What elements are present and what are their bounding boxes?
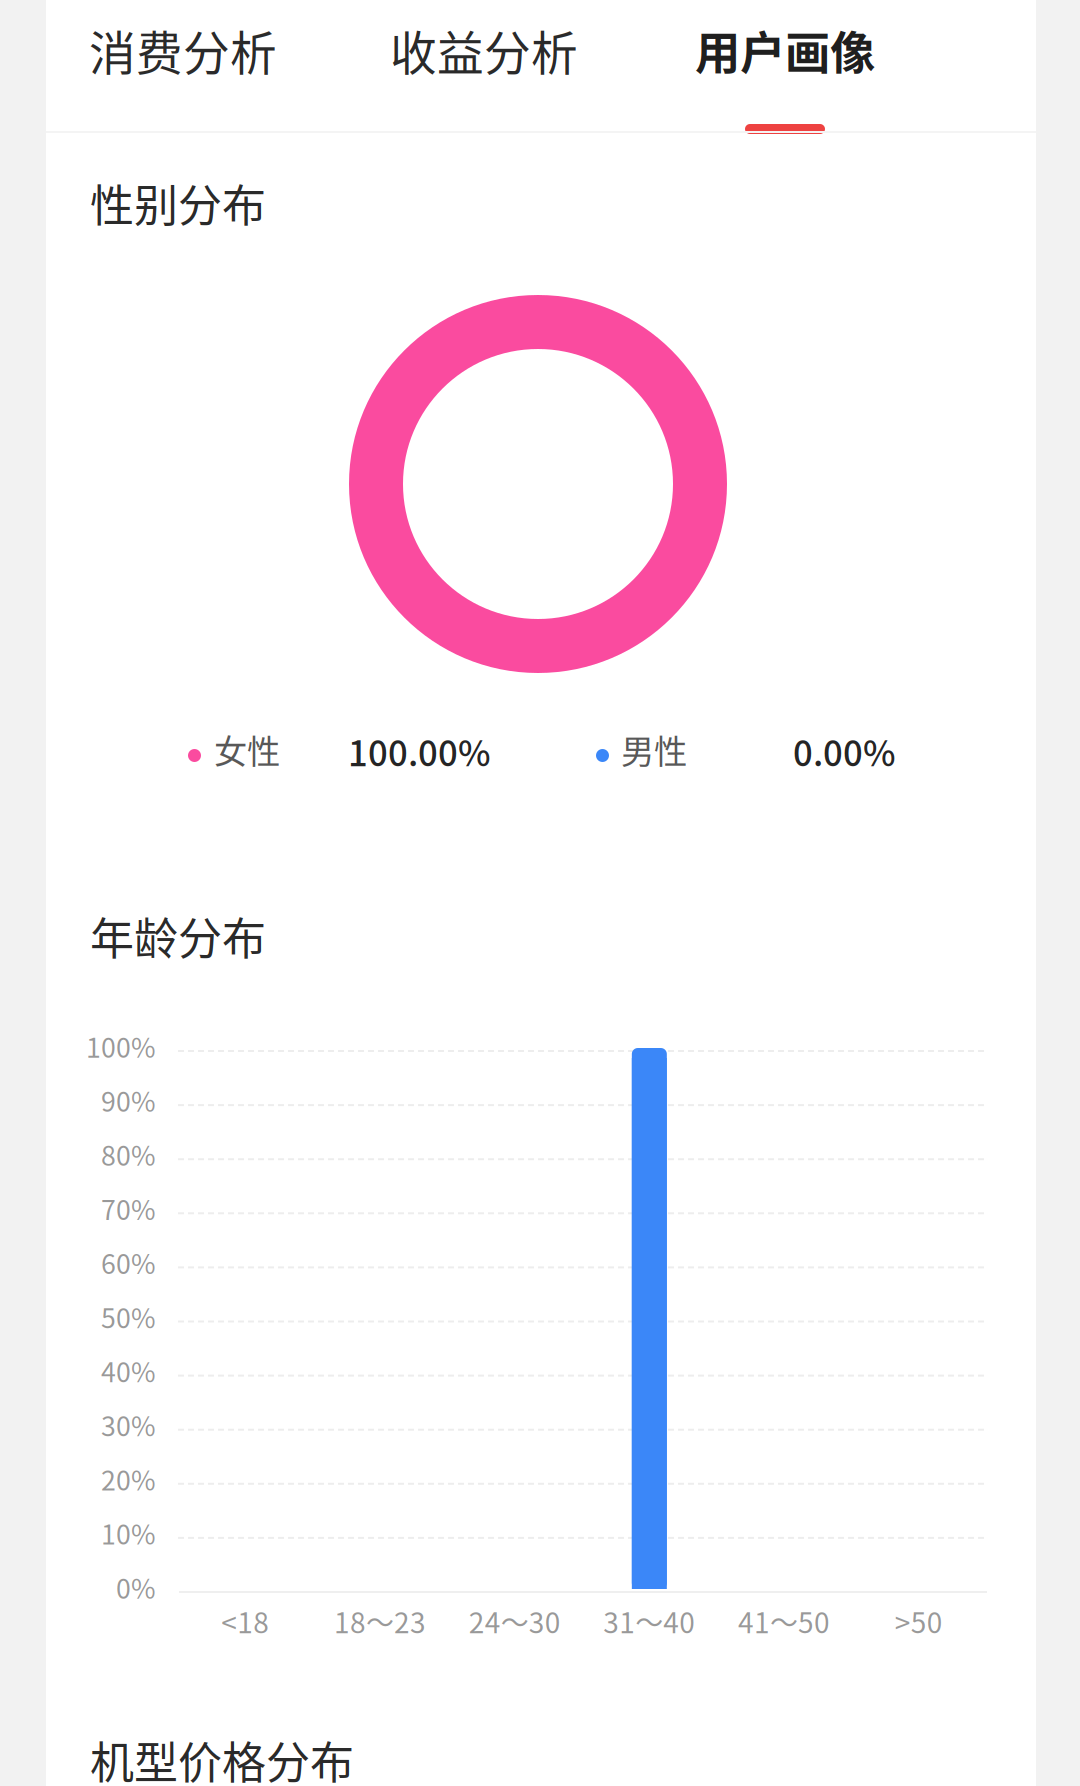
- staticText: 40%: [101, 1351, 156, 1390]
- staticText: 24〜30: [469, 1601, 561, 1641]
- button[interactable]: 收益分析: [374, 0, 594, 131]
- staticText: 消费分析: [89, 16, 277, 84]
- staticText: 0.00%: [793, 726, 896, 776]
- staticText: 41〜50: [738, 1601, 830, 1641]
- staticText: 女性: [214, 725, 280, 773]
- button[interactable]: 消费分析: [73, 0, 293, 131]
- staticText: 30%: [101, 1405, 156, 1444]
- staticText: 60%: [101, 1243, 156, 1282]
- staticText: 18〜23: [334, 1601, 426, 1641]
- staticText: 50%: [101, 1297, 156, 1336]
- staticText: 90%: [101, 1081, 156, 1119]
- button[interactable]: 用户画像: [675, 0, 895, 131]
- staticText: 31〜40: [603, 1601, 695, 1641]
- staticText: 10%: [101, 1514, 156, 1552]
- staticText: 收益分析: [390, 16, 578, 84]
- staticText: 年龄分布: [90, 904, 266, 968]
- staticText: 100%: [86, 1027, 156, 1065]
- staticText: 70%: [101, 1189, 156, 1228]
- staticText: >50: [895, 1601, 943, 1641]
- staticText: 机型价格分布: [90, 1728, 354, 1786]
- staticText: 100.00%: [348, 726, 491, 776]
- staticText: 80%: [101, 1135, 156, 1173]
- staticText: 0%: [116, 1568, 156, 1606]
- staticText: 用户画像: [695, 17, 875, 83]
- staticText: 性别分布: [90, 171, 266, 235]
- staticText: 20%: [101, 1459, 156, 1498]
- staticText: 男性: [621, 725, 687, 773]
- staticText: <18: [221, 1601, 269, 1641]
